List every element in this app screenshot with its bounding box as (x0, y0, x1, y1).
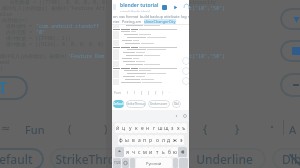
staticText: attribute (164, 14, 180, 19)
button[interactable]: м (142, 147, 148, 157)
button[interactable]: ш (157, 123, 163, 133)
button[interactable]: Backspace (178, 147, 187, 157)
button[interactable]: { (203, 121, 208, 136)
staticText: р (149, 137, 153, 144)
button[interactable]: Settings (183, 114, 187, 118)
button[interactable]: в (130, 135, 136, 145)
button[interactable]: Comma (130, 158, 135, 168)
button[interactable]: п (142, 135, 148, 145)
staticText: log (181, 14, 187, 19)
button[interactable]: Default (113, 100, 124, 108)
staticText: ь (162, 149, 165, 156)
button[interactable]: Default (0, 148, 44, 168)
staticText: t("10","50") (189, 53, 226, 59)
button[interactable]: ж (172, 135, 178, 145)
staticText: ъ (182, 125, 186, 132)
button[interactable]: Strikethrough (280, 73, 300, 97)
staticText: } (0, 65, 4, 71)
staticText: end (0, 59, 10, 65)
button[interactable]: StrikeThrough (126, 100, 146, 108)
button[interactable]: Underscore (148, 100, 170, 108)
staticText: rize (113, 19, 120, 24)
staticText: з (171, 125, 174, 132)
button[interactable]: Dbl (172, 100, 181, 108)
staticText: 缓冲数据 = ((7740), 1)) (6, 35, 72, 41)
button[interactable]: я (124, 147, 130, 157)
button[interactable]: й (115, 123, 121, 133)
button[interactable]: Align (280, 8, 300, 30)
button[interactable]: к (133, 123, 139, 133)
staticText: slimeChangerCity (144, 19, 176, 24)
button[interactable]: Русский (136, 158, 172, 168)
staticText: и (149, 149, 153, 156)
button[interactable]: з (169, 123, 175, 133)
button[interactable]: ц (121, 123, 127, 133)
button[interactable]: е (139, 123, 145, 133)
button[interactable]: о (154, 135, 160, 145)
button[interactable]: ь (160, 147, 166, 157)
button[interactable]: б (166, 147, 172, 157)
staticText: 缓冲写入(内存地址) 被缓冲( (0, 53, 68, 59)
staticText: й (116, 125, 120, 132)
staticText: DlbL (282, 151, 300, 167)
button[interactable]: э (178, 135, 184, 145)
staticText: Fun (114, 90, 122, 95)
button[interactable]: Emoji (122, 158, 129, 168)
button[interactable]: н (145, 123, 151, 133)
button[interactable]: г (151, 123, 157, 133)
staticText: format (126, 14, 139, 19)
button[interactable]: Close (288, 152, 300, 168)
staticText: "com.android.standoff (36, 23, 100, 29)
button[interactable]: } (235, 121, 240, 136)
button[interactable]: Fun (25, 122, 45, 137)
button[interactable]: щ (163, 123, 169, 133)
staticText: 内容范围 = (6, 29, 36, 35)
button[interactable]: blender tutorial (120, 2, 159, 12)
button[interactable]: Insert image (162, 5, 167, 10)
button[interactable]: DlbL (272, 148, 300, 168)
button[interactable]: и (148, 147, 154, 157)
button[interactable]: ( (68, 121, 72, 136)
button[interactable]: х (175, 123, 181, 133)
staticText: a simple blender tutorial (120, 10, 150, 12)
button[interactable]: Undo (184, 4, 189, 10)
button[interactable]: Shift (115, 147, 124, 157)
staticText: м (143, 149, 147, 156)
button[interactable]: ч (130, 147, 136, 157)
button[interactable]: ф (118, 135, 124, 145)
button[interactable]: р (148, 135, 154, 145)
staticText: ) (134, 90, 136, 95)
staticText: в (132, 137, 135, 144)
staticText: StrikeThrough (126, 102, 146, 106)
button[interactable]: slimeChangerCity (144, 19, 176, 24)
staticText: r("10","50") (189, 5, 226, 11)
button[interactable]: Voice input (175, 115, 178, 118)
button[interactable]: Underline (182, 148, 266, 168)
staticText: б (168, 149, 171, 156)
button[interactable]: т (154, 147, 160, 157)
button[interactable]: у (127, 123, 133, 133)
button[interactable]: л (160, 135, 166, 145)
button[interactable]: ъ (181, 123, 187, 133)
button[interactable]: Numbers (113, 158, 121, 168)
button[interactable]: Highlight (280, 40, 300, 62)
button[interactable]: с (136, 147, 142, 157)
button[interactable]: а (136, 135, 142, 145)
button[interactable]: ≈ (1, 122, 11, 135)
staticText: · (169, 90, 171, 95)
staticText: "Feature Dem (68, 53, 105, 59)
staticText: build (140, 14, 149, 19)
staticText: 缓冲写入(内存地址) 被缓冲("Feature Act (2, 5, 106, 11)
button[interactable]: ) (104, 121, 108, 136)
staticText: г (153, 125, 156, 132)
button[interactable]: д (166, 135, 172, 145)
button[interactable]: A (289, 122, 297, 137)
button[interactable]: ю (172, 147, 178, 157)
button[interactable]: StrikeThrough (50, 148, 142, 168)
button[interactable]: Period (173, 158, 178, 168)
button[interactable]: Run (173, 5, 178, 10)
button[interactable]: ы (124, 135, 130, 145)
button[interactable]: Text style (0, 76, 28, 100)
